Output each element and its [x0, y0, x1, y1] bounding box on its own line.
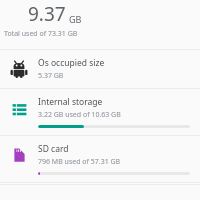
- staticText: Os occupied size: [38, 57, 105, 69]
- staticText: Internal storage: [38, 96, 103, 108]
- staticText: Total used of 73.31 GB: [4, 29, 78, 39]
- staticText: 3.22 GB used of 10.63 GB: [38, 110, 121, 120]
- button[interactable]: Internal storage: [0, 89, 200, 135]
- staticText: 796 MB used of 57.31 GB: [38, 157, 121, 167]
- staticText: SD card: [38, 143, 69, 155]
- button[interactable]: Os occupied size: [0, 50, 200, 88]
- staticText: GB: [69, 13, 82, 25]
- staticText: 5.37 GB: [38, 71, 64, 81]
- staticText: 9.37: [28, 1, 66, 27]
- button[interactable]: SD card: [0, 136, 200, 182]
